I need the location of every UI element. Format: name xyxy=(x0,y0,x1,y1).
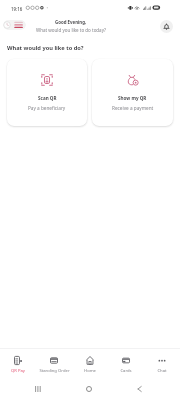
staticText: Show my QR xyxy=(118,95,147,101)
button[interactable]: Home xyxy=(72,352,108,376)
button[interactable]: Bank logo xyxy=(3,20,26,30)
button[interactable]: Back xyxy=(129,379,149,399)
staticText: Good Evening, xyxy=(55,19,87,25)
staticText: QR Pay xyxy=(11,368,25,374)
staticText: What would you like to do today? xyxy=(36,27,106,33)
staticText: Home xyxy=(84,368,96,374)
button[interactable]: Home xyxy=(79,379,99,399)
button[interactable]: Recents xyxy=(28,379,48,399)
staticText: Scan QR xyxy=(38,95,57,101)
staticText: What would you like to do? xyxy=(7,44,84,52)
staticText: Cards xyxy=(120,368,132,374)
staticText: Standing Order xyxy=(39,368,70,374)
button[interactable]: Chat xyxy=(144,352,180,376)
button[interactable]: Notifications xyxy=(160,20,173,33)
button[interactable]: Cards xyxy=(108,352,144,376)
button[interactable]: QR Pay xyxy=(0,352,36,376)
staticText: Chat xyxy=(157,368,167,374)
staticText: Pay a beneficiary xyxy=(28,105,66,111)
staticText: 19:16 xyxy=(11,6,23,12)
button[interactable]: Show my QR xyxy=(92,59,173,126)
button[interactable]: Scan QR xyxy=(7,59,87,126)
button[interactable]: Standing Order xyxy=(36,352,72,376)
staticText: Receive a payment xyxy=(112,105,154,111)
